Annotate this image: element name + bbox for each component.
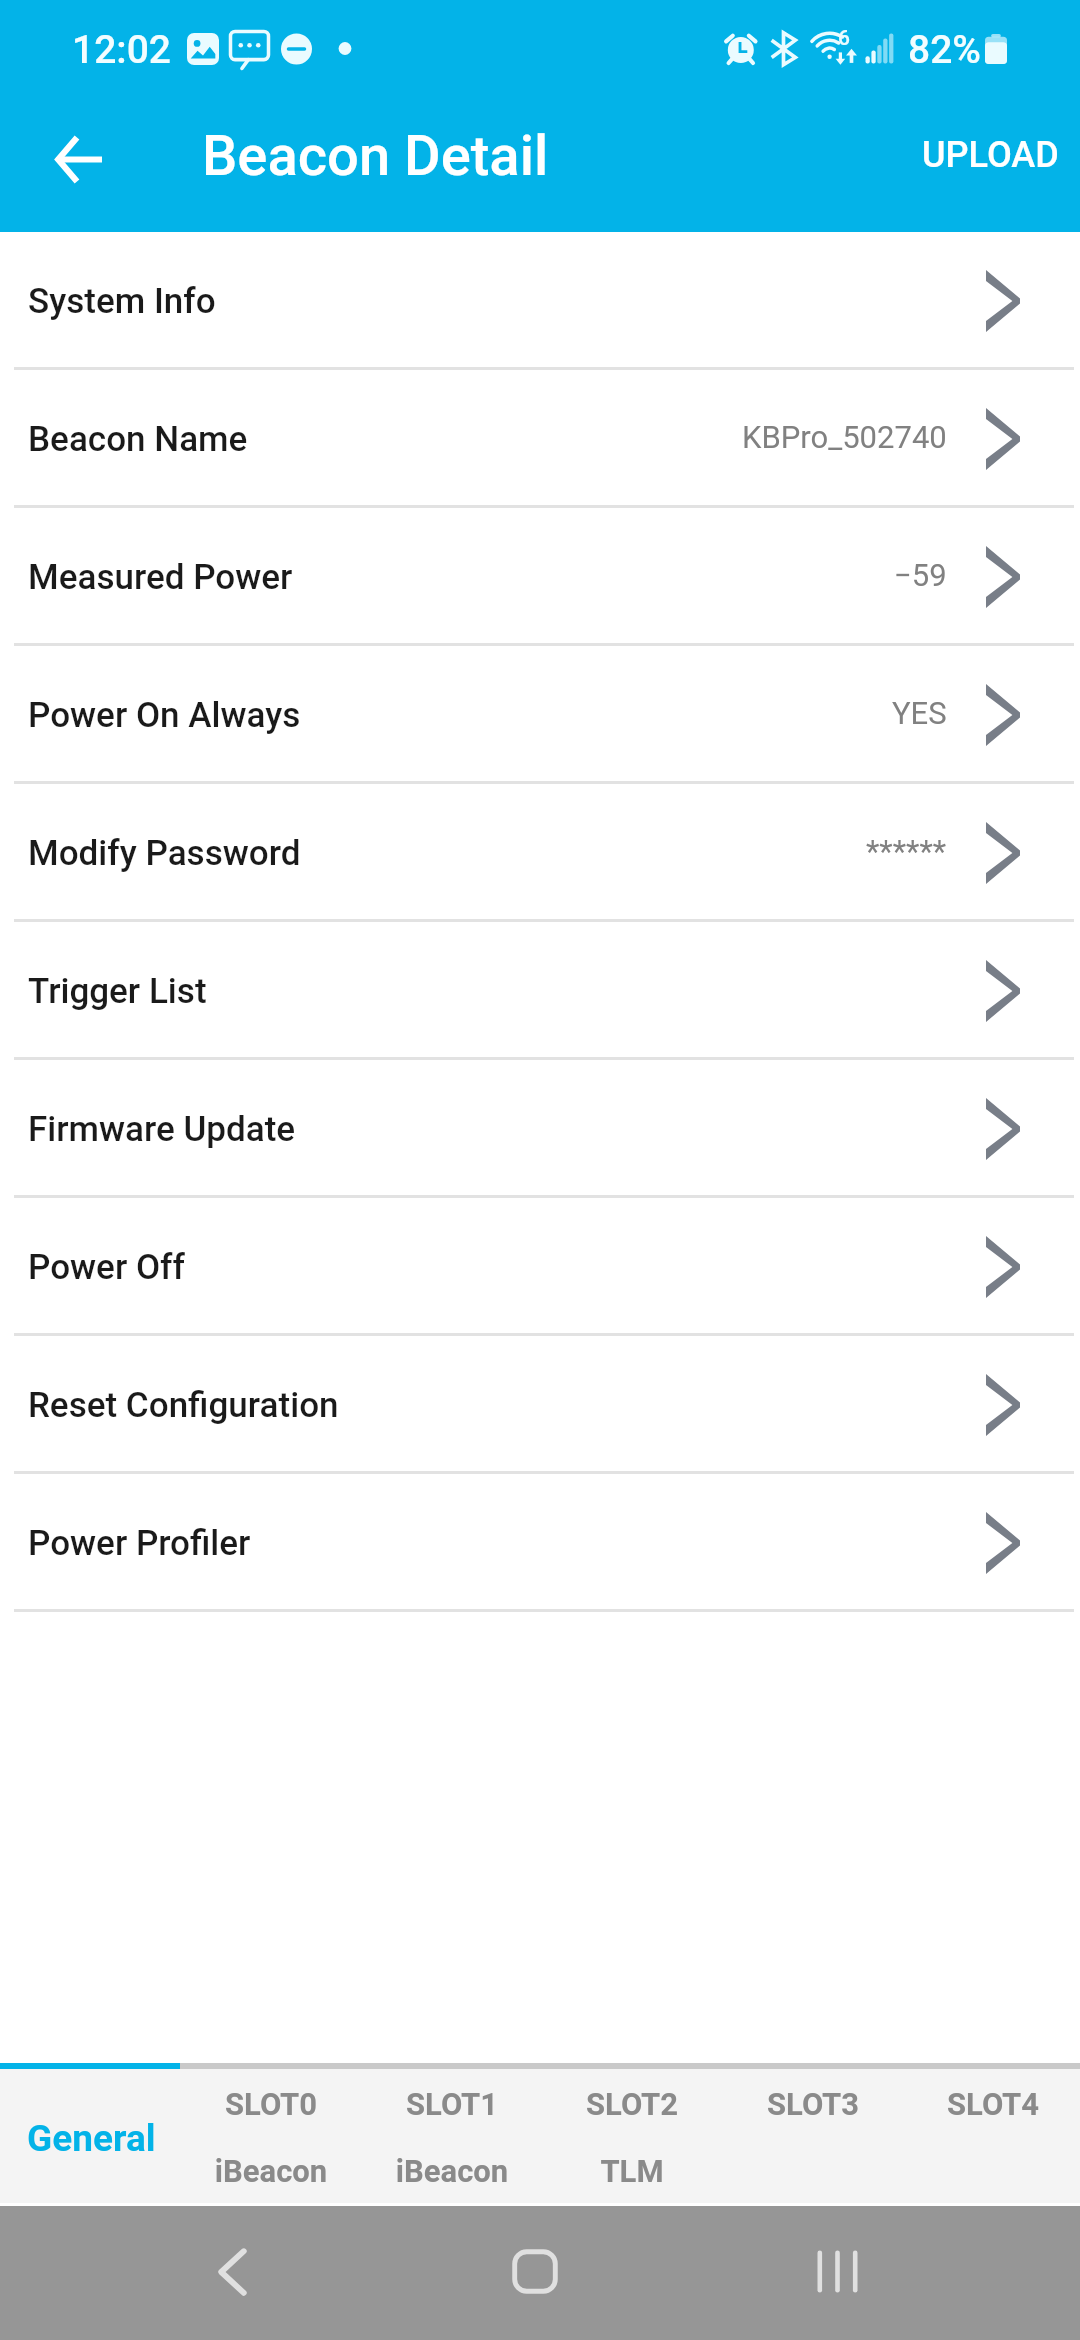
staticText: Power Off bbox=[28, 1247, 185, 1288]
staticText: UPLOAD bbox=[922, 134, 1059, 176]
staticText: Beacon Name bbox=[28, 419, 248, 460]
button[interactable]: Reset Configuration bbox=[0, 1336, 1080, 1474]
button[interactable]: UPLOAD bbox=[898, 112, 1080, 206]
staticText: ****** bbox=[866, 833, 947, 869]
staticText: iBeacon bbox=[181, 2153, 361, 2189]
button[interactable]: Home bbox=[486, 2223, 583, 2320]
staticText: Trigger List bbox=[28, 971, 207, 1012]
staticText: SLOT1 bbox=[362, 2086, 542, 2122]
button[interactable]: SLOT1 bbox=[362, 2069, 542, 2203]
button[interactable]: Measured Power bbox=[0, 508, 1080, 646]
button[interactable]: Power Profiler bbox=[0, 1474, 1080, 1612]
button[interactable]: System Info bbox=[0, 232, 1080, 370]
staticText: SLOT2 bbox=[542, 2086, 722, 2122]
button[interactable]: Trigger List bbox=[0, 922, 1080, 1060]
staticText: Modify Password bbox=[28, 833, 301, 874]
staticText: Power On Always bbox=[28, 695, 301, 736]
button[interactable]: Power On Always bbox=[0, 646, 1080, 784]
staticText: −59 bbox=[894, 557, 947, 593]
staticText: SLOT0 bbox=[181, 2086, 361, 2122]
staticText: Measured Power bbox=[28, 557, 293, 598]
button[interactable]: Back bbox=[184, 2223, 281, 2320]
staticText: YES bbox=[892, 695, 947, 731]
button[interactable]: Navigate up bbox=[34, 114, 124, 204]
button[interactable]: Modify Password bbox=[0, 784, 1080, 922]
staticText: KBPro_502740 bbox=[742, 419, 947, 455]
button[interactable]: General bbox=[0, 2069, 180, 2203]
button[interactable]: SLOT0 bbox=[181, 2069, 361, 2203]
staticText: SLOT4 bbox=[903, 2086, 1080, 2122]
staticText: Firmware Update bbox=[28, 1109, 296, 1150]
button[interactable]: SLOT3 bbox=[723, 2069, 903, 2203]
button[interactable]: SLOT2 bbox=[542, 2069, 722, 2203]
staticText: General bbox=[27, 2117, 156, 2160]
staticText: iBeacon bbox=[362, 2153, 542, 2189]
staticText: 82% bbox=[908, 27, 981, 73]
button[interactable]: Recent apps bbox=[789, 2223, 886, 2320]
staticText: Reset Configuration bbox=[28, 1385, 339, 1426]
staticText: Power Profiler bbox=[28, 1523, 251, 1564]
staticText: 6 bbox=[838, 26, 850, 51]
staticText: System Info bbox=[28, 281, 216, 322]
button[interactable]: SLOT4 bbox=[903, 2069, 1080, 2203]
staticText: Beacon Detail bbox=[202, 123, 549, 189]
staticText: TLM bbox=[542, 2153, 722, 2189]
button[interactable]: Beacon Name bbox=[0, 370, 1080, 508]
staticText: SLOT3 bbox=[723, 2086, 903, 2122]
button[interactable]: Power Off bbox=[0, 1198, 1080, 1336]
button[interactable]: Firmware Update bbox=[0, 1060, 1080, 1198]
staticText: 12:02 bbox=[72, 27, 172, 73]
